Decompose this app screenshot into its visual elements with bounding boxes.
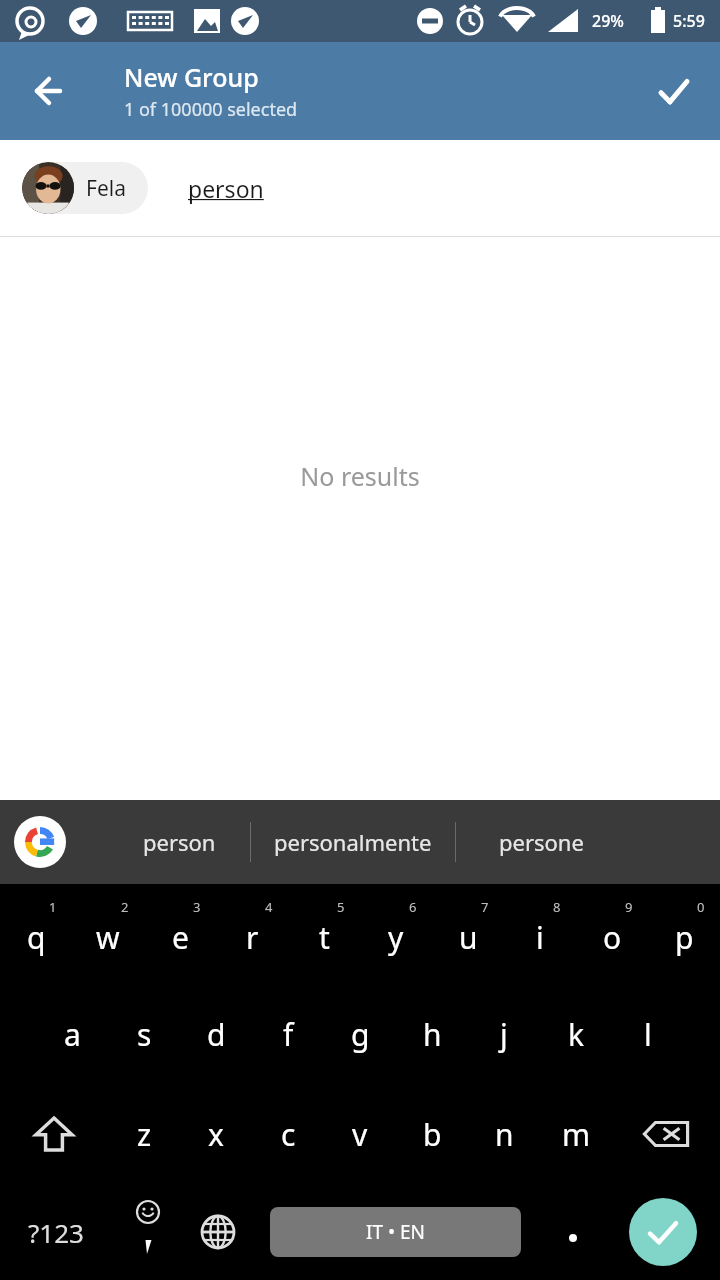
button[interactable]: z [108,1084,180,1184]
button[interactable]: IT • EN [270,1207,521,1257]
button[interactable]: 6 [360,884,432,984]
button[interactable]: 1 [0,884,72,984]
staticText: m [562,1114,591,1155]
button[interactable]: 8 [504,884,576,984]
staticText: persone [499,827,584,857]
staticText: x [208,1114,224,1155]
button[interactable]: personalmente [251,800,455,884]
staticText: p [675,917,694,958]
staticText: Fela [86,174,126,203]
button[interactable]: k [540,984,612,1084]
button[interactable]: persone [456,800,626,884]
button[interactable]: h [396,984,468,1084]
staticText: No results [300,459,420,493]
staticText: a [64,1014,81,1055]
button[interactable]: Change language [184,1184,252,1280]
button[interactable]: Google [14,816,66,868]
staticText: q [27,917,46,958]
staticText: ?123 [28,1215,84,1250]
button[interactable]: 2 [72,884,144,984]
staticText: k [568,1014,585,1055]
staticText: v [352,1114,368,1155]
staticText: 3 [193,898,201,916]
staticText: t [319,917,330,958]
button[interactable]: Period [534,1184,612,1280]
staticText: l [644,1014,652,1055]
button[interactable]: b [396,1084,468,1184]
button[interactable]: a [36,984,108,1084]
staticText: 1 of 100000 selected [124,97,298,122]
staticText: f [283,1014,294,1055]
button[interactable]: Back [16,59,80,123]
staticText: e [172,917,189,958]
staticText: s [137,1014,152,1055]
staticText: g [351,1014,370,1055]
button[interactable]: 4 [216,884,288,984]
staticText: r [246,917,259,958]
staticText: 5 [337,898,345,916]
button[interactable]: c [252,1084,324,1184]
button[interactable]: 7 [432,884,504,984]
staticText: 4 [265,898,273,916]
staticText: c [281,1114,296,1155]
staticText: j [500,1014,508,1055]
staticText: 7 [481,898,489,916]
staticText: IT • EN [366,1219,426,1245]
button[interactable]: g [324,984,396,1084]
staticText: b [423,1114,442,1155]
button[interactable]: person [188,173,264,204]
staticText: h [423,1014,442,1055]
button[interactable]: j [468,984,540,1084]
button[interactable]: ?123 [0,1184,112,1280]
staticText: z [137,1114,152,1155]
button[interactable]: v [324,1084,396,1184]
button[interactable]: Confirm [642,59,706,123]
button[interactable]: 5 [288,884,360,984]
button[interactable]: person [108,800,250,884]
staticText: New Group [124,60,259,94]
button[interactable]: 0 [648,884,720,984]
staticText: 8 [553,898,561,916]
button[interactable]: s [108,984,180,1084]
staticText: personalmente [274,827,432,857]
staticText: o [603,917,622,958]
staticText: n [495,1114,514,1155]
staticText: u [459,917,478,958]
button[interactable]: 9 [576,884,648,984]
button[interactable]: Backspace [612,1084,720,1184]
button[interactable]: m [540,1084,612,1184]
button[interactable]: l [612,984,684,1084]
staticText: w [96,917,120,958]
staticText: 0 [697,898,705,916]
staticText: person [143,827,216,857]
staticText: person [188,173,264,204]
staticText: 6 [409,898,417,916]
staticText: 2 [121,898,129,916]
button[interactable]: Shift [0,1084,108,1184]
staticText: y [388,917,404,958]
staticText: 5:59 [673,10,705,32]
staticText: 9 [625,898,633,916]
button[interactable]: Fela [22,162,148,214]
button[interactable]: x [180,1084,252,1184]
button[interactable]: Enter [629,1198,697,1266]
button[interactable]: 3 [144,884,216,984]
staticText: d [207,1014,226,1055]
button[interactable]: d [180,984,252,1084]
button[interactable]: f [252,984,324,1084]
staticText: i [536,917,544,958]
button[interactable]: Emoji and comma [112,1184,184,1280]
staticText: 1 [49,898,57,916]
button[interactable]: n [468,1084,540,1184]
staticText: 29% [592,10,624,32]
